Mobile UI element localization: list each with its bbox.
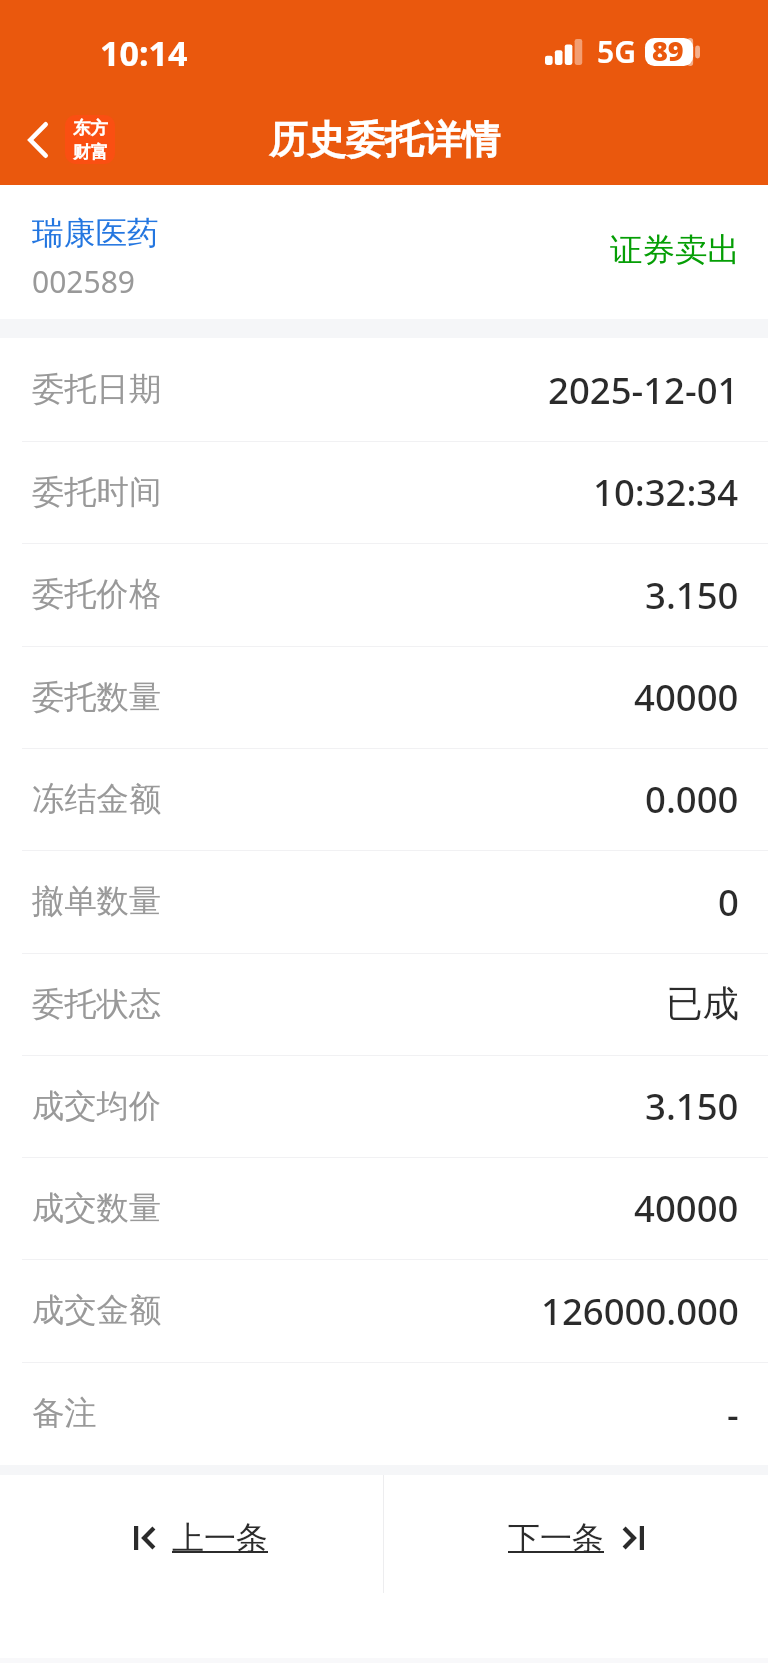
- staticText: 0: [718, 877, 739, 927]
- staticText: 0.000: [645, 774, 739, 824]
- staticText: 撤单数量: [32, 881, 162, 922]
- staticText: 委托时间: [32, 472, 162, 513]
- staticText: 10:14: [100, 30, 188, 76]
- staticText: 历史委托详情: [269, 116, 500, 165]
- staticText: 10:32:34: [593, 467, 739, 517]
- staticText: 成交均价: [32, 1086, 162, 1127]
- staticText: -: [727, 1389, 739, 1439]
- staticText: 委托价格: [32, 574, 162, 615]
- staticText: 委托日期: [32, 369, 162, 410]
- button[interactable]: 成交金额: [0, 1259, 768, 1362]
- staticText: 40000: [634, 672, 739, 722]
- staticText: 成交金额: [32, 1290, 162, 1331]
- staticText: 上一条: [172, 1518, 268, 1558]
- button[interactable]: 备注: [0, 1362, 768, 1465]
- button[interactable]: 成交数量: [0, 1157, 768, 1259]
- button[interactable]: 冻结金额: [0, 748, 768, 850]
- staticText: 证券卖出: [610, 230, 740, 271]
- button[interactable]: 委托数量: [0, 646, 768, 748]
- staticText: 已成: [666, 981, 739, 1027]
- staticText: 东方: [73, 117, 108, 139]
- button[interactable]: 委托价格: [0, 543, 768, 646]
- staticText: 财富: [73, 141, 108, 163]
- staticText: 委托状态: [32, 984, 162, 1025]
- staticText: 瑞康医药: [32, 213, 159, 253]
- staticText: 成交数量: [32, 1188, 162, 1229]
- staticText: 40000: [634, 1183, 739, 1233]
- button[interactable]: Back: [18, 111, 125, 168]
- staticText: 下一条: [508, 1518, 604, 1558]
- button[interactable]: 下一条: [384, 1475, 768, 1593]
- staticText: 5G: [597, 31, 636, 72]
- button[interactable]: 委托时间: [0, 441, 768, 543]
- staticText: 备注: [32, 1393, 97, 1434]
- staticText: 3.150: [645, 1081, 739, 1131]
- button[interactable]: 委托状态: [0, 953, 768, 1055]
- staticText: 89: [652, 32, 684, 69]
- button[interactable]: 上一条: [0, 1475, 383, 1593]
- staticText: 3.150: [645, 570, 739, 620]
- staticText: 126000.000: [541, 1286, 739, 1336]
- button[interactable]: 委托日期: [0, 338, 768, 441]
- staticText: 冻结金额: [32, 779, 162, 820]
- staticText: 委托数量: [32, 677, 162, 718]
- staticText: 2025-12-01: [548, 365, 739, 415]
- button[interactable]: 成交均价: [0, 1055, 768, 1157]
- staticText: 002589: [32, 261, 135, 302]
- button[interactable]: 撤单数量: [0, 850, 768, 953]
